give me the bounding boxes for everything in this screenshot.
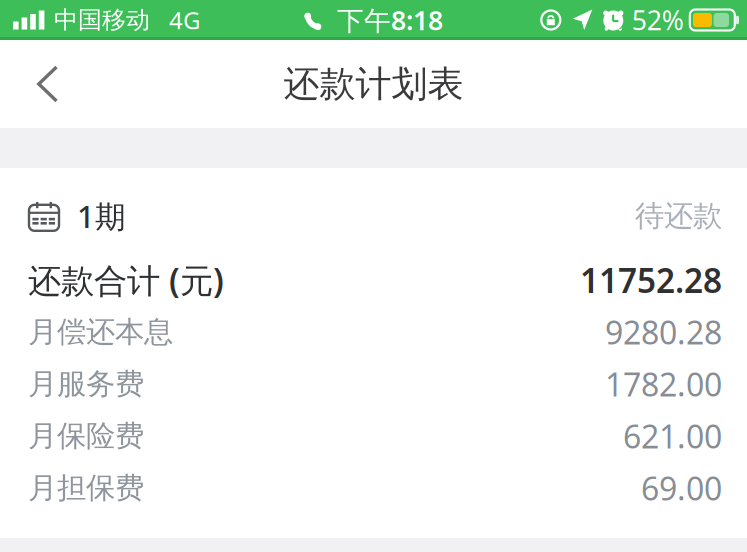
staticText: 1782.00 bbox=[605, 363, 722, 405]
staticText: 9280.28 bbox=[605, 311, 722, 353]
staticText: 月服务费 bbox=[28, 366, 144, 402]
staticText: 中国移动 bbox=[54, 5, 150, 35]
staticText: 还款计划表 bbox=[283, 62, 463, 106]
staticText: 4G bbox=[169, 4, 200, 36]
staticText: 还款合计 (元) bbox=[28, 258, 224, 302]
staticText: 下午8:18 bbox=[337, 2, 443, 38]
staticText: 621.00 bbox=[623, 415, 722, 457]
staticText: 52% bbox=[632, 2, 684, 38]
staticText: 月担保费 bbox=[28, 470, 144, 506]
staticText: 待还款 bbox=[635, 198, 722, 234]
staticText: 月保险费 bbox=[28, 418, 144, 454]
staticText: 1期 bbox=[77, 196, 126, 236]
staticText: 月偿还本息 bbox=[28, 314, 173, 350]
button[interactable]: 返回 bbox=[0, 40, 89, 128]
staticText: 69.00 bbox=[641, 467, 722, 509]
staticText: 11752.28 bbox=[580, 258, 722, 302]
